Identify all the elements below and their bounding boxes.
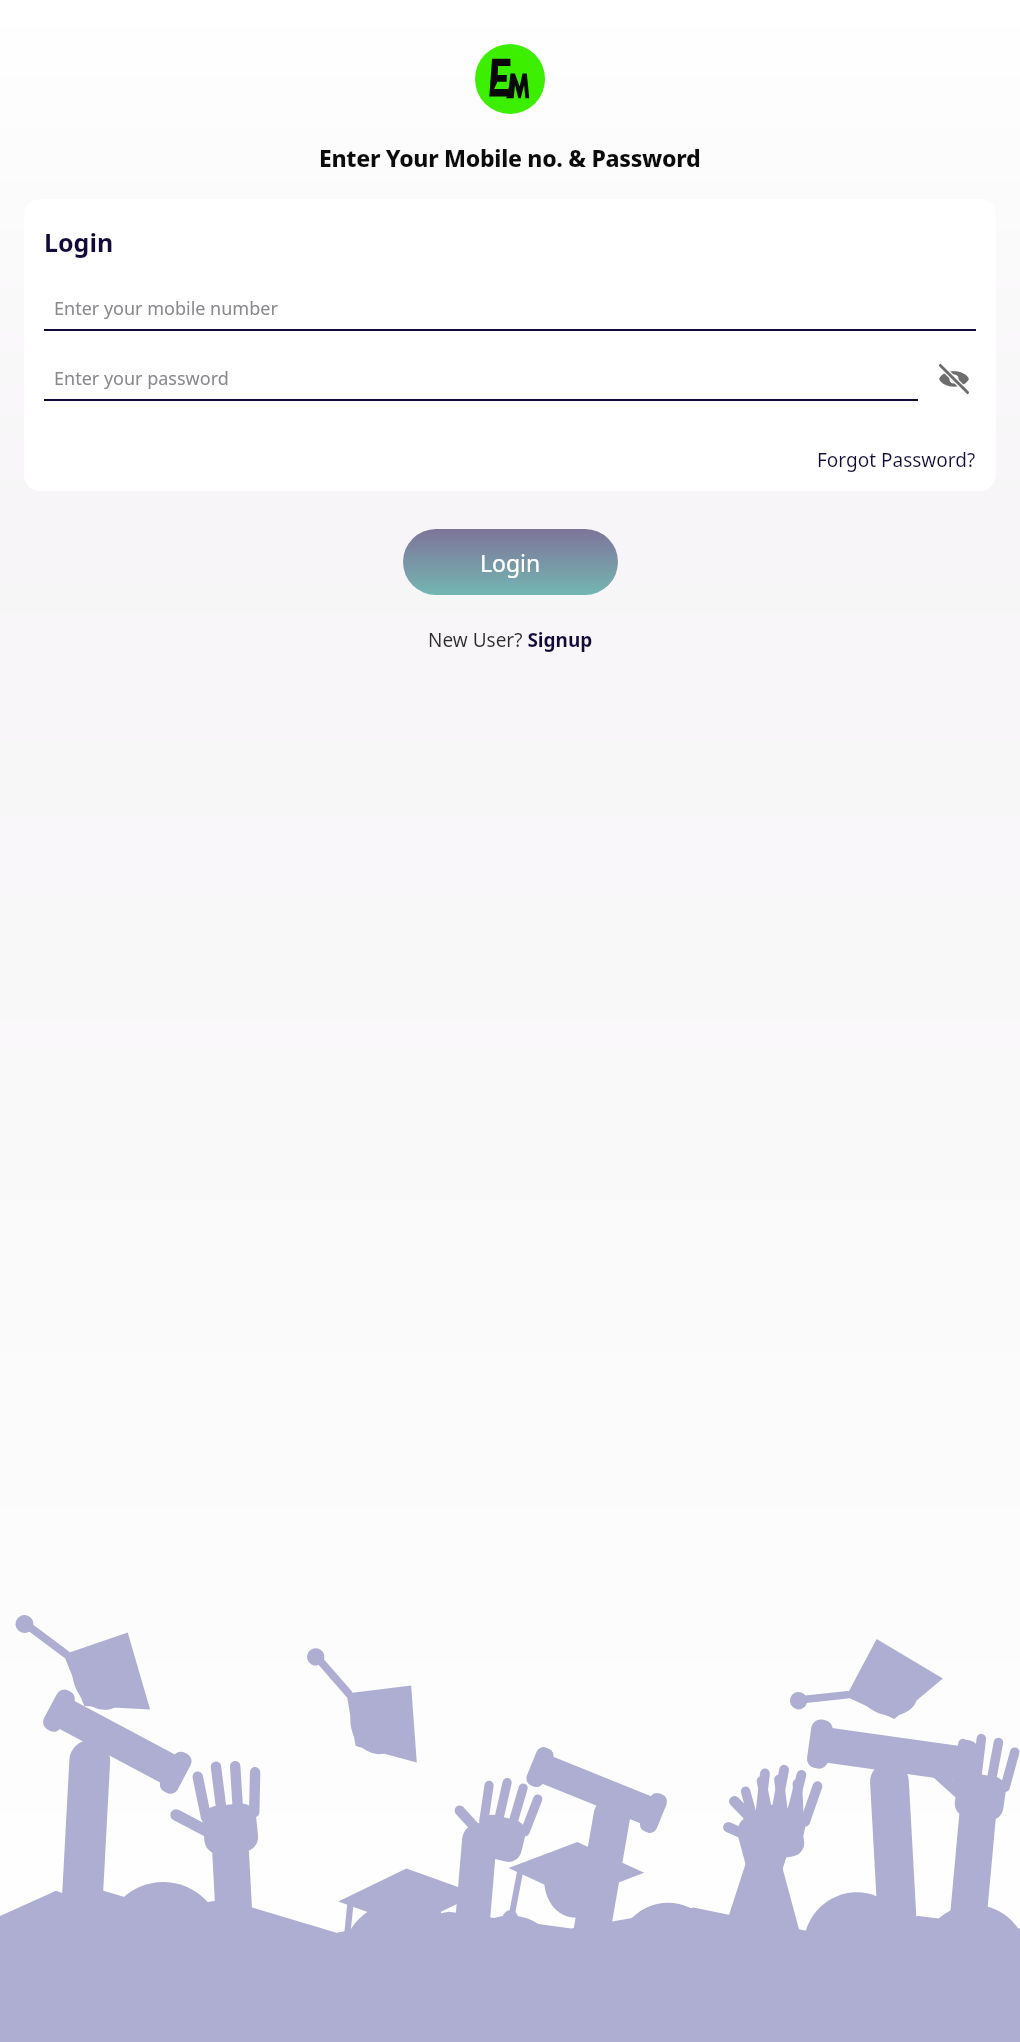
button[interactable]: Enter your mobile number bbox=[44, 287, 976, 331]
staticText: Enter your password bbox=[54, 366, 229, 391]
button[interactable]: Show password bbox=[932, 357, 976, 401]
staticText: Login bbox=[44, 225, 114, 259]
button[interactable]: Login bbox=[403, 529, 618, 595]
staticText: Login bbox=[480, 547, 541, 578]
staticText: Enter your mobile number bbox=[54, 296, 278, 321]
staticText: New User? Signup bbox=[428, 627, 593, 653]
button[interactable]: Enter your password bbox=[44, 357, 918, 401]
staticText: Forgot Password? bbox=[817, 447, 976, 473]
button[interactable]: New User? Signup bbox=[428, 627, 593, 653]
staticText: Enter Your Mobile no. & Password bbox=[319, 142, 701, 173]
button[interactable]: Forgot Password? bbox=[817, 447, 976, 473]
